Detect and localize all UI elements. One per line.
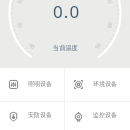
staticText: 环境设备 — [93, 80, 117, 88]
button[interactable]: 监控设备 — [65, 102, 130, 130]
button[interactable]: 安防设备 — [0, 102, 64, 130]
staticText: 监控设备 — [93, 111, 117, 119]
staticText: 当前温度 — [53, 44, 78, 52]
button[interactable]: 照明设备 — [0, 68, 64, 101]
staticText: 照明设备 — [28, 80, 52, 88]
staticText: 安防设备 — [28, 111, 52, 119]
staticText: 0.0 — [53, 0, 81, 23]
button[interactable]: 环境设备 — [65, 68, 130, 101]
